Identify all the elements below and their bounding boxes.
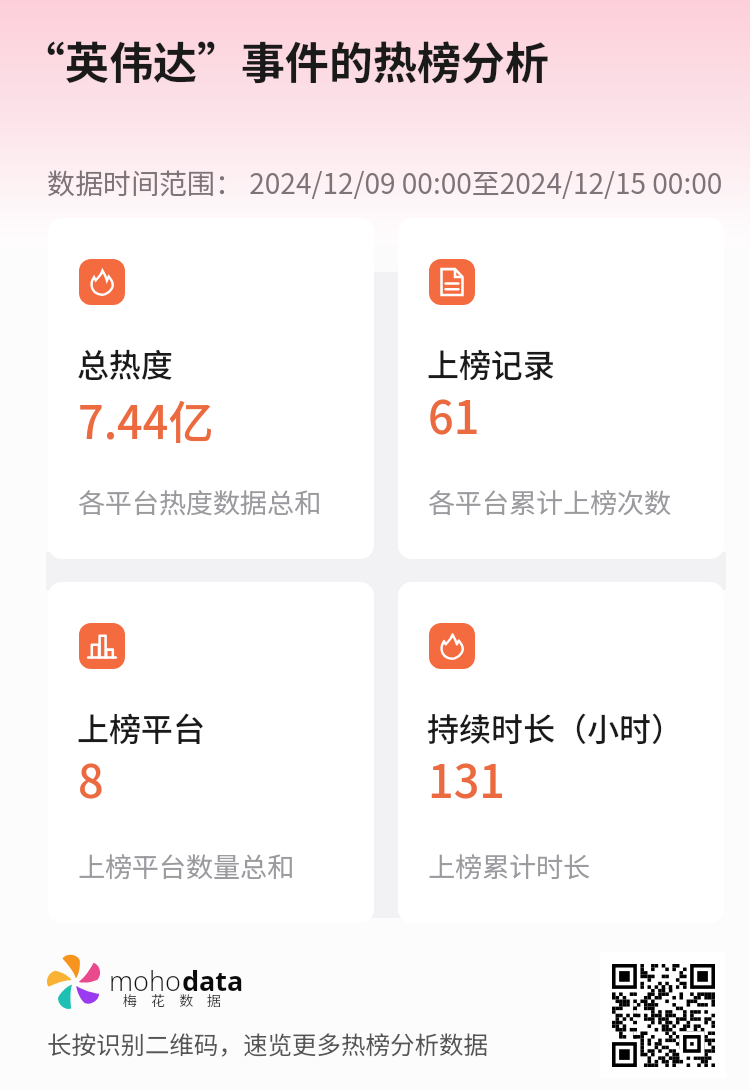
button[interactable]: 总热度 <box>48 218 374 559</box>
staticText: 各平台热度数据总和 <box>78 482 321 521</box>
button[interactable]: 上榜平台 <box>48 582 374 923</box>
staticText: 持续时长（小时） <box>427 704 684 750</box>
button[interactable]: 上榜记录 <box>398 218 724 559</box>
staticText: 上榜记录 <box>427 340 556 386</box>
staticText: 8 <box>78 748 104 810</box>
staticText: 上榜平台数量总和 <box>78 846 294 885</box>
staticText: 各平台累计上榜次数 <box>428 482 671 521</box>
staticText: 131 <box>428 748 505 810</box>
staticText: 上榜累计时长 <box>428 846 590 885</box>
staticText: 长按识别二维码，速览更多热榜分析数据 <box>47 1026 488 1061</box>
staticText: moho <box>109 962 182 999</box>
staticText: “英伟达”事件的热榜分析 <box>21 28 549 92</box>
staticText: 上榜平台 <box>77 704 206 750</box>
button[interactable]: Scan QR code <box>600 952 726 1078</box>
staticText: 7.44亿 <box>78 389 214 451</box>
button[interactable]: mohodata brand <box>40 948 244 1005</box>
staticText: 总热度 <box>77 340 174 386</box>
staticText: 数据时间范围： 2024/12/09 00:00至2024/12/15 00:0… <box>47 162 723 203</box>
button[interactable]: 持续时长（小时） <box>398 582 724 923</box>
staticText: 61 <box>428 384 480 446</box>
staticText: 梅 花 数 据 <box>123 990 221 1010</box>
staticText: data <box>182 962 244 999</box>
